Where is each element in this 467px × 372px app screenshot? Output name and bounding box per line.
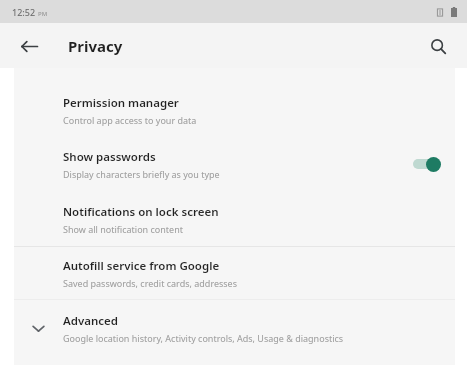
staticText: Display characters briefly as you type xyxy=(63,168,220,180)
staticText: Control app access to your data xyxy=(63,114,197,126)
staticText: 12:52 xyxy=(12,6,36,18)
button[interactable]: Permission manager xyxy=(14,84,455,136)
staticText: Show passwords xyxy=(63,149,156,165)
staticText: Show all notification content xyxy=(63,223,183,235)
staticText: Autofill service from Google xyxy=(63,258,220,274)
staticText: Saved passwords, credit cards, addresses xyxy=(63,277,237,289)
button[interactable]: Advanced xyxy=(14,300,455,356)
staticText: PM xyxy=(38,10,48,18)
button[interactable]: Back xyxy=(12,29,46,63)
staticText: Permission manager xyxy=(63,95,179,111)
button[interactable]: Autofill service from Google xyxy=(14,247,455,299)
staticText: Advanced xyxy=(63,313,118,329)
staticText: Google location history, Activity contro… xyxy=(63,332,344,344)
button[interactable]: Show passwords xyxy=(14,136,455,192)
button[interactable]: Search xyxy=(421,29,455,63)
button[interactable]: Show passwords toggle xyxy=(411,155,443,173)
staticText: Privacy xyxy=(68,36,123,56)
button[interactable]: Notifications on lock screen xyxy=(14,192,455,246)
staticText: Notifications on lock screen xyxy=(63,204,219,220)
